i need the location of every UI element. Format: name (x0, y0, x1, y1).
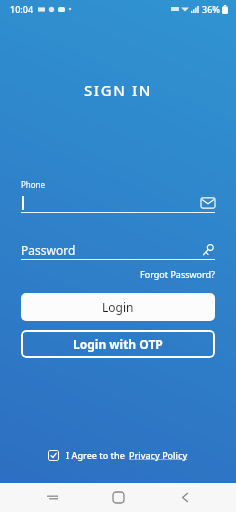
button[interactable]: Recents (37, 483, 67, 512)
button[interactable]: Show password (201, 243, 215, 257)
staticText: Login with OTP (73, 336, 163, 352)
staticText: 10:04 (10, 3, 34, 15)
staticText: 36% (202, 3, 220, 15)
button[interactable]: Forgot Password? (21, 268, 215, 280)
button[interactable]: Back (170, 483, 200, 512)
button[interactable]: Login (21, 293, 215, 321)
button[interactable]: Email (201, 196, 215, 210)
staticText: SIGN IN (0, 80, 236, 100)
button[interactable]: I Agree to the (48, 449, 125, 461)
staticText: Password (21, 242, 76, 258)
button[interactable]: Home (103, 483, 133, 512)
button[interactable]: Privacy Policy (129, 449, 188, 461)
button[interactable]: Login with OTP (21, 330, 215, 358)
staticText: Phone (21, 179, 46, 190)
staticText: Login (102, 299, 134, 315)
staticText: I Agree to the (66, 449, 125, 461)
